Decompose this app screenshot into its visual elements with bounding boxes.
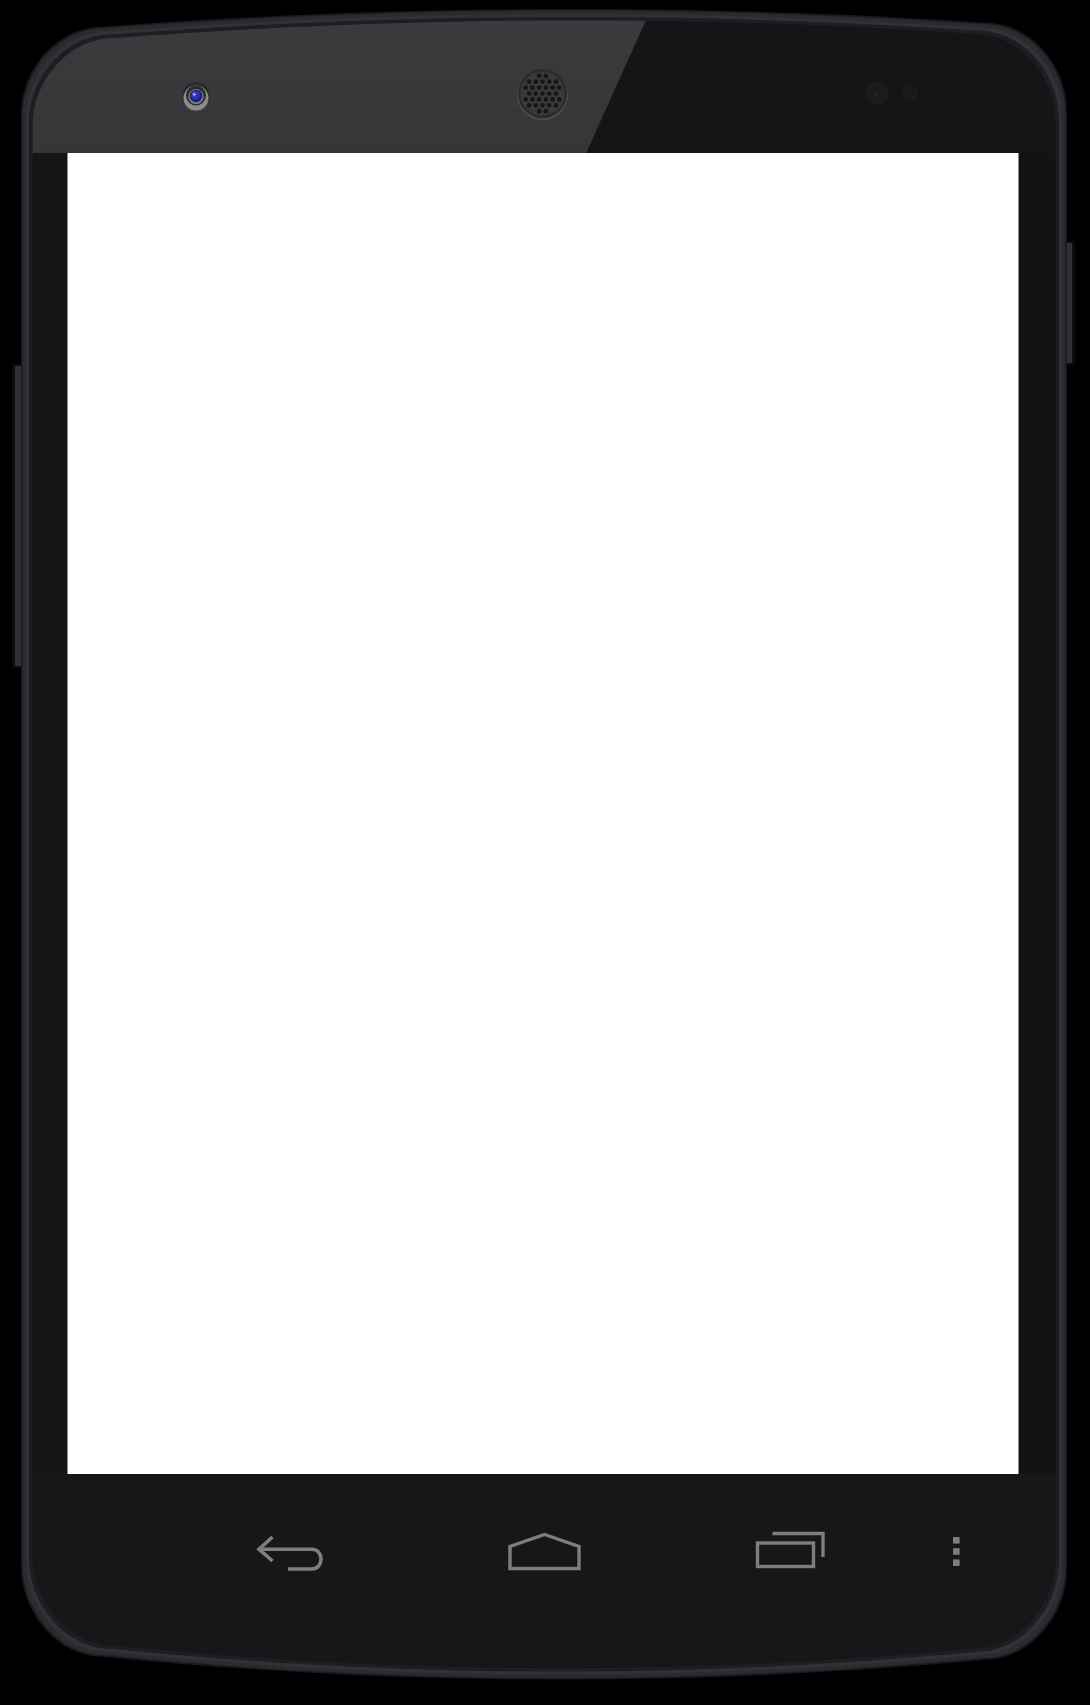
button[interactable]: More options <box>906 1488 1016 1618</box>
button[interactable]: Recent apps <box>706 1488 876 1618</box>
button[interactable]: Back <box>205 1488 375 1618</box>
button[interactable]: Home <box>460 1488 630 1618</box>
